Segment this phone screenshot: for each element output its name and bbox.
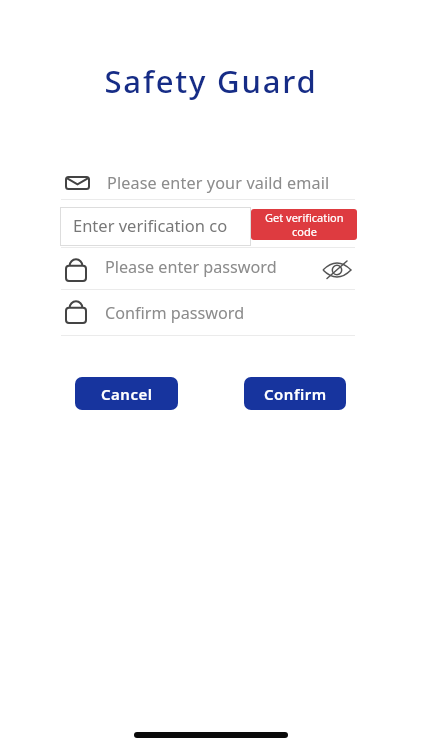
button[interactable]: Get verification <box>251 209 357 240</box>
button[interactable]: Enter verification co <box>60 207 251 246</box>
button[interactable]: Confirm <box>244 377 346 410</box>
button[interactable]: Please enter password <box>61 252 355 282</box>
staticText: Enter verification co <box>73 214 228 236</box>
staticText: Cancel <box>101 384 153 404</box>
staticText: Safety Guard <box>0 60 422 102</box>
button[interactable]: Cancel <box>75 377 178 410</box>
button[interactable]: Please enter your vaild email <box>61 167 355 199</box>
staticText: Get verification <box>265 210 344 225</box>
staticText: Confirm <box>264 384 327 404</box>
button[interactable]: Confirm password <box>61 298 355 328</box>
staticText: Confirm password <box>105 302 245 324</box>
staticText: code <box>292 224 317 239</box>
staticText: Please enter password <box>105 256 277 278</box>
staticText: Please enter your vaild email <box>107 172 330 194</box>
